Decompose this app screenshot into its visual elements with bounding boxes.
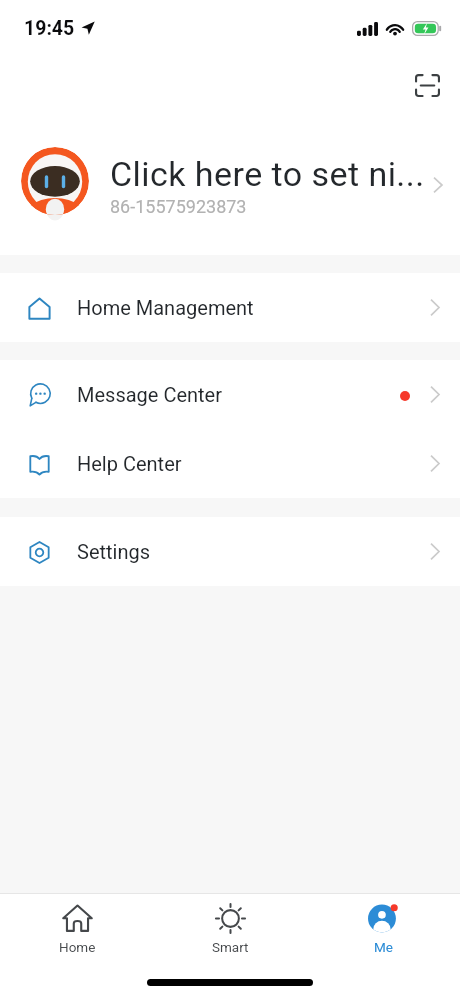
button[interactable]: Message Center (0, 360, 460, 429)
button[interactable]: Smart (154, 903, 307, 955)
staticText: Message Center (77, 383, 400, 406)
staticText: 86-15575923873 (110, 196, 247, 217)
button[interactable]: Home (0, 903, 154, 955)
staticText: Home Management (77, 296, 430, 319)
staticText: Me (374, 939, 393, 955)
staticText: Home (59, 939, 96, 955)
staticText: Click here to set ni... (110, 154, 425, 194)
button[interactable]: Help Center (0, 429, 460, 498)
button[interactable]: Home Management (0, 273, 460, 342)
button[interactable]: Click here to set ni... (0, 112, 460, 255)
button[interactable]: Settings (0, 517, 460, 586)
button[interactable]: Me (307, 903, 460, 955)
staticText: Settings (77, 540, 430, 563)
staticText: 19:45 (24, 17, 75, 40)
button[interactable]: Scan QR code (405, 63, 449, 107)
staticText: Smart (212, 939, 249, 955)
staticText: Help Center (77, 452, 430, 475)
